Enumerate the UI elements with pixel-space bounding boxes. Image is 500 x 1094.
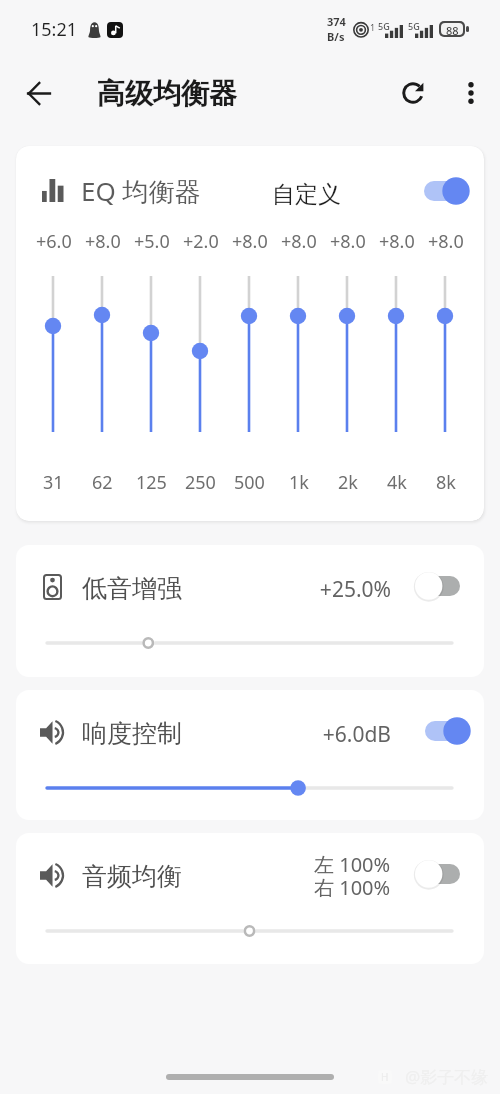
staticText: 62	[92, 470, 113, 495]
button[interactable]: Reset	[389, 69, 436, 116]
staticText: EQ 均衡器	[81, 173, 201, 209]
button[interactable]: Disable	[414, 177, 470, 205]
button[interactable]: Disable	[415, 717, 471, 745]
staticText: H	[381, 1070, 389, 1084]
button[interactable]: 2k band	[323, 266, 372, 446]
button[interactable]: 音频均衡	[16, 833, 484, 964]
staticText: +5.0	[134, 229, 170, 254]
staticText: 125	[136, 470, 167, 495]
staticText: +8.0	[232, 229, 268, 254]
button[interactable]: 低音增强 level	[36, 623, 464, 663]
button[interactable]: 500 band	[225, 266, 274, 446]
staticText: +6.0	[36, 229, 72, 254]
staticText: 5G	[408, 20, 420, 32]
button[interactable]: 8k band	[421, 266, 470, 446]
staticText: 5G	[378, 20, 390, 32]
button[interactable]: 音频均衡 level	[36, 911, 464, 951]
staticText: 左 100%	[314, 851, 391, 878]
staticText: 8k	[436, 470, 456, 495]
staticText: 自定义	[272, 180, 341, 209]
staticText: 右 100%	[314, 874, 391, 901]
button[interactable]: 250 band	[176, 266, 225, 446]
staticText: +6.0dB	[322, 720, 391, 749]
staticText: 15:21	[31, 17, 78, 42]
staticText: B/s	[327, 29, 345, 44]
button[interactable]: Back	[14, 69, 63, 118]
staticText: +2.0	[183, 229, 219, 254]
staticText: +8.0	[330, 229, 366, 254]
staticText: 高级均衡器	[97, 76, 237, 111]
staticText: 响度控制	[82, 718, 182, 749]
button[interactable]: 低音增强	[16, 545, 484, 677]
button[interactable]: 31 band	[29, 266, 78, 446]
button[interactable]: 62 band	[78, 266, 127, 446]
button[interactable]: 4k band	[372, 266, 421, 446]
staticText: +8.0	[428, 229, 464, 254]
staticText: +25.0%	[319, 575, 391, 604]
staticText: +8.0	[379, 229, 415, 254]
staticText: 1k	[289, 470, 309, 495]
button[interactable]: 响度控制	[16, 690, 484, 820]
button[interactable]: 125 band	[127, 266, 176, 446]
staticText: +8.0	[281, 229, 317, 254]
staticText: 1	[370, 21, 376, 33]
staticText: 31	[43, 470, 64, 495]
staticText: +8.0	[85, 229, 121, 254]
staticText: 4k	[387, 470, 407, 495]
staticText: @影子不缘	[405, 1065, 489, 1088]
staticText: 250	[185, 470, 216, 495]
button[interactable]: Enable	[415, 860, 471, 888]
staticText: 374	[327, 14, 346, 29]
button[interactable]: 1k band	[274, 266, 323, 446]
staticText: 低音增强	[82, 573, 182, 604]
staticText: 音频均衡	[82, 861, 182, 892]
button[interactable]: More options	[447, 69, 494, 116]
staticText: 2k	[338, 470, 358, 495]
button[interactable]: 响度控制 level	[36, 768, 464, 808]
staticText: 88	[446, 23, 459, 35]
button[interactable]: Enable	[415, 572, 471, 600]
staticText: 500	[234, 470, 265, 495]
